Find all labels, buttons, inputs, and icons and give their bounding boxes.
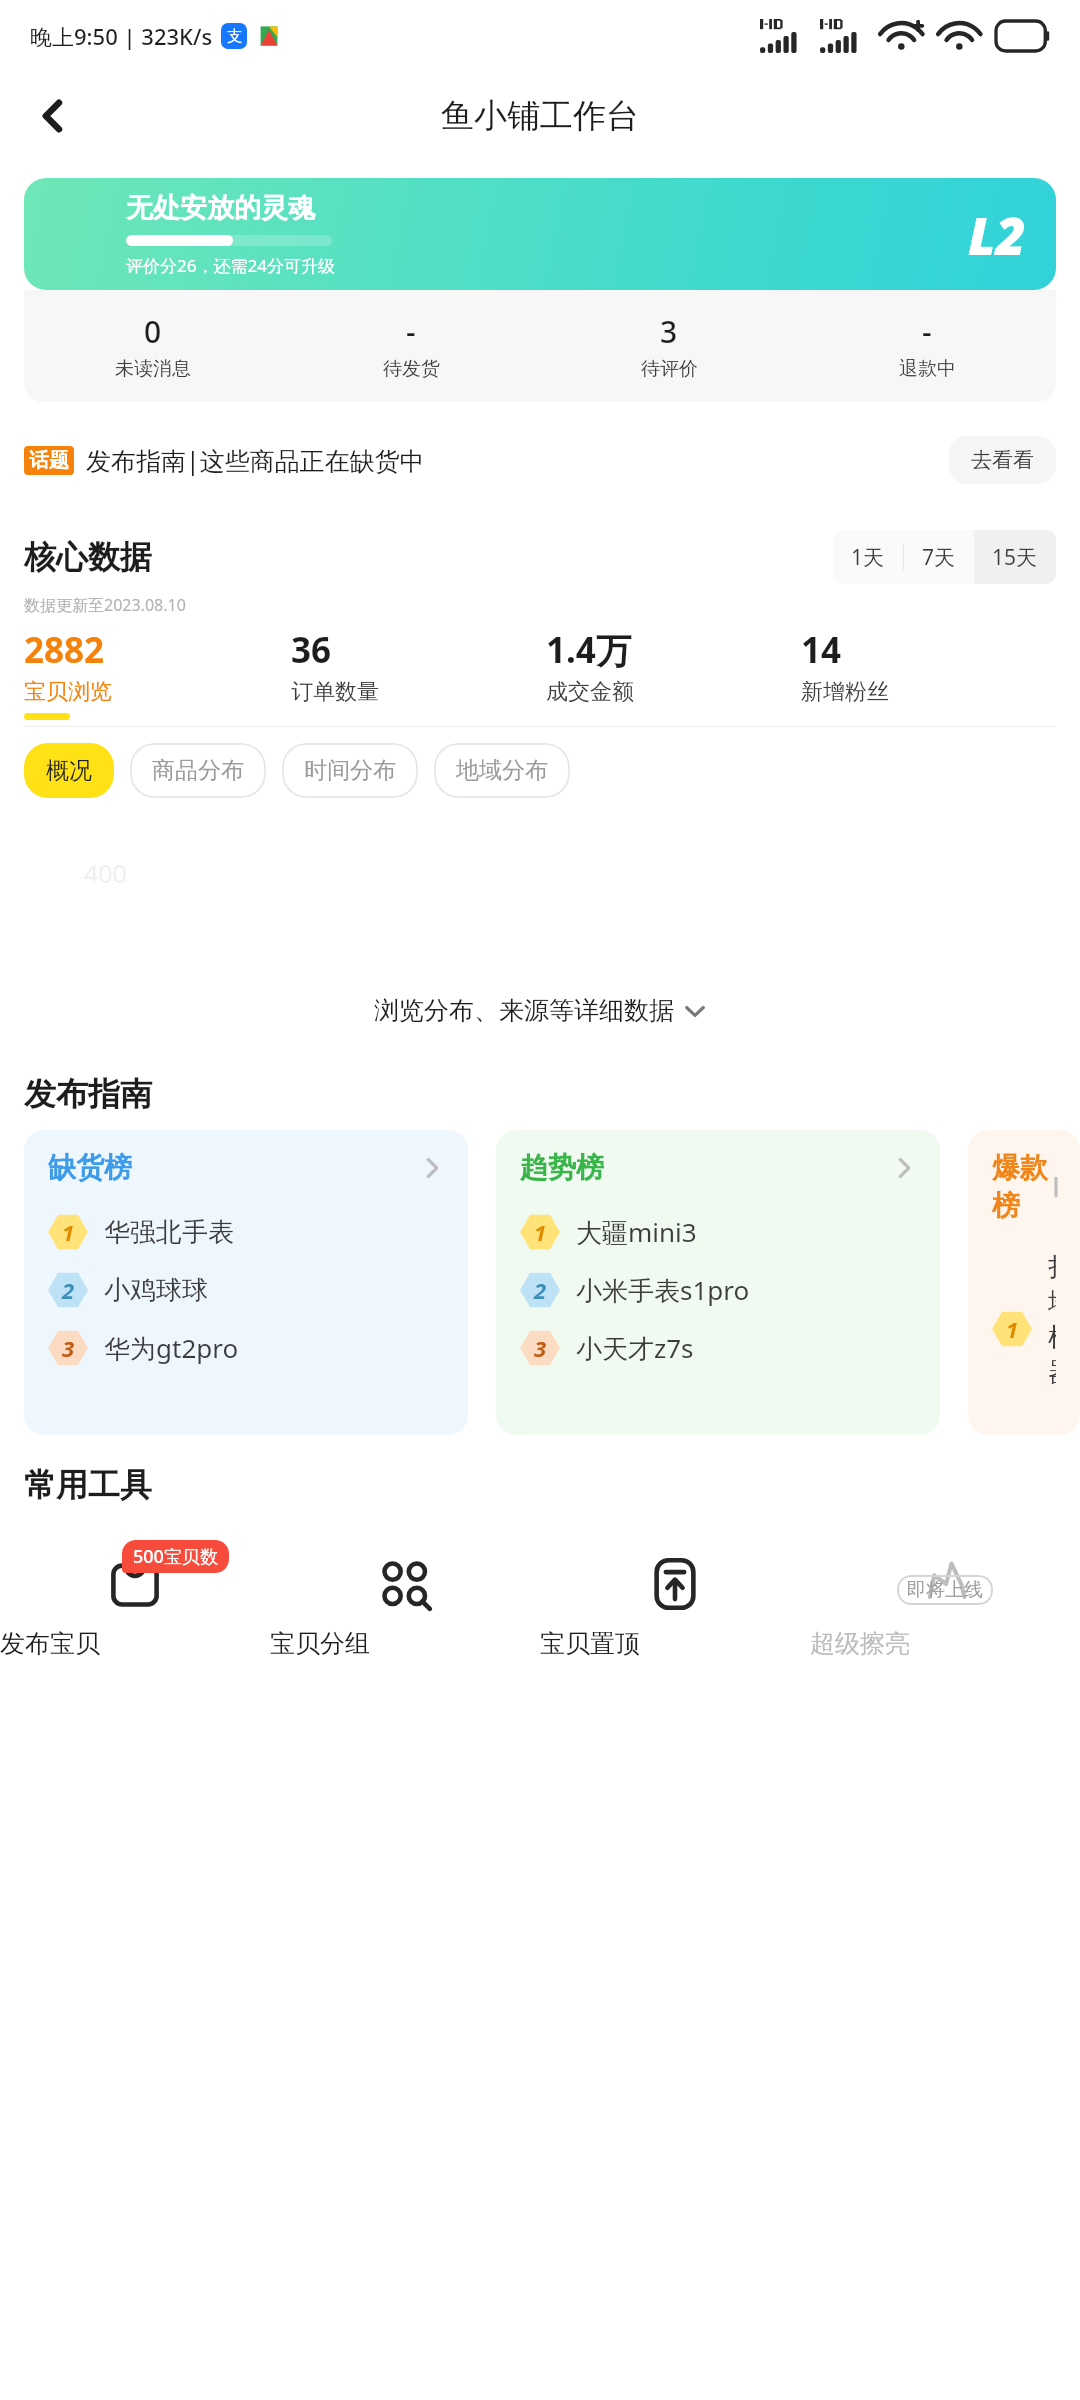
- staticText: 华为gt2pro: [104, 1330, 239, 1366]
- staticText: 0: [144, 311, 162, 352]
- button[interactable]: 趋势榜: [496, 1130, 940, 1435]
- button[interactable]: 1: [520, 1212, 916, 1252]
- staticText: 退款中: [899, 357, 956, 381]
- button[interactable]: 宝贝分组: [270, 1507, 540, 1697]
- staticText: 3: [534, 1333, 547, 1363]
- button[interactable]: 宝贝置顶: [540, 1507, 810, 1697]
- staticText: 即将上线: [907, 1578, 983, 1602]
- staticText: 核心数据: [24, 537, 152, 577]
- staticText: 2: [534, 1275, 547, 1305]
- button[interactable]: 15天: [974, 530, 1056, 584]
- staticText: 鱼小铺工作台: [441, 95, 639, 137]
- staticText: 发布宝贝: [0, 1628, 270, 1659]
- staticText: 评价分26，还需24分可升级: [126, 254, 335, 277]
- staticText: 华强北手表: [104, 1216, 234, 1249]
- staticText: 去看看: [971, 447, 1034, 473]
- button[interactable]: 2: [48, 1270, 444, 1310]
- staticText: -: [922, 311, 932, 352]
- staticText: 趋势榜: [520, 1150, 604, 1185]
- button[interactable]: 概况: [24, 743, 114, 798]
- button[interactable]: 即将上线: [810, 1507, 1080, 1697]
- staticText: 宝贝分组: [270, 1628, 540, 1659]
- staticText: 时间分布: [304, 756, 396, 785]
- staticText: 小天才z7s: [576, 1330, 694, 1366]
- staticText: 超级擦亮: [810, 1628, 1080, 1659]
- button[interactable]: 1: [992, 1251, 1056, 1406]
- staticText: 未读消息: [115, 357, 191, 381]
- staticText: 宝贝浏览: [24, 678, 112, 706]
- staticText: 无处安放的灵魂: [126, 191, 315, 225]
- staticText: 小米手表s1pro: [576, 1272, 750, 1308]
- staticText: 浏览分布、来源等详细数据: [374, 995, 674, 1026]
- staticText: 2: [62, 1275, 75, 1305]
- staticText: 1.4万: [546, 626, 631, 674]
- staticText: 常用工具: [24, 1465, 152, 1505]
- staticText: 500宝贝数: [133, 1544, 218, 1569]
- staticText: 1: [534, 1217, 547, 1247]
- staticText: 36: [291, 626, 332, 674]
- staticText: 商品分布: [152, 756, 244, 785]
- staticText: 小鸡球球: [104, 1274, 208, 1307]
- staticText: 3: [62, 1333, 75, 1363]
- button[interactable]: 2882: [24, 626, 291, 720]
- button[interactable]: 地域分布: [434, 743, 570, 798]
- button[interactable]: 商品分布: [130, 743, 266, 798]
- staticText: 晚上9:50 | 323K/s: [30, 21, 213, 51]
- staticText: 扫地机器人: [1048, 1251, 1056, 1406]
- staticText: 14: [801, 626, 842, 674]
- button[interactable]: 浏览分布、来源等详细数据: [374, 995, 706, 1026]
- staticText: 订单数量: [291, 678, 379, 706]
- staticText: 话题: [29, 448, 69, 473]
- staticText: 7天: [922, 543, 956, 572]
- staticText: 宝贝置顶: [540, 1628, 810, 1659]
- staticText: 发布指南: [24, 1074, 152, 1114]
- staticText: 新增粉丝: [801, 678, 889, 706]
- staticText: 数据更新至2023.08.10: [24, 594, 186, 616]
- staticText: 待发货: [383, 357, 440, 381]
- button[interactable]: Back: [22, 85, 84, 147]
- staticText: 400: [84, 856, 127, 890]
- button[interactable]: 时间分布: [282, 743, 418, 798]
- button[interactable]: -: [282, 290, 540, 402]
- button[interactable]: -: [798, 290, 1056, 402]
- button[interactable]: 3: [540, 290, 798, 402]
- button[interactable]: 0: [24, 290, 282, 402]
- staticText: 爆款榜: [992, 1150, 1056, 1224]
- button[interactable]: 话题: [24, 412, 1056, 508]
- button[interactable]: 1: [48, 1212, 444, 1252]
- staticText: 大疆mini3: [576, 1214, 697, 1250]
- staticText: 1天: [851, 543, 885, 572]
- button[interactable]: 去看看: [971, 447, 1034, 473]
- staticText: 支: [227, 27, 242, 46]
- button[interactable]: 缺货榜: [24, 1130, 468, 1435]
- button[interactable]: 3: [48, 1328, 444, 1368]
- button[interactable]: 爆款榜: [968, 1130, 1080, 1435]
- button[interactable]: 2: [520, 1270, 916, 1310]
- staticText: 3: [660, 311, 678, 352]
- staticText: 1: [62, 1217, 75, 1247]
- staticText: -: [406, 311, 416, 352]
- staticText: 发布指南|这些商品正在缺货中: [86, 443, 425, 477]
- button[interactable]: 无处安放的灵魂: [24, 178, 1056, 290]
- staticText: 2882: [24, 626, 105, 674]
- button[interactable]: 7天: [904, 530, 974, 584]
- button[interactable]: 3: [520, 1328, 916, 1368]
- button[interactable]: 1.4万: [546, 626, 801, 720]
- staticText: 地域分布: [456, 756, 548, 785]
- button[interactable]: 1天: [833, 530, 903, 584]
- staticText: L2: [968, 199, 1026, 270]
- button[interactable]: 500宝贝数: [0, 1507, 270, 1697]
- staticText: 概况: [46, 756, 92, 785]
- staticText: 15天: [992, 543, 1038, 572]
- button[interactable]: 36: [291, 626, 546, 720]
- staticText: 待评价: [641, 357, 698, 381]
- staticText: 1: [1006, 1314, 1019, 1344]
- staticText: 缺货榜: [48, 1150, 132, 1185]
- staticText: 成交金额: [546, 678, 634, 706]
- button[interactable]: 14: [801, 626, 1056, 720]
